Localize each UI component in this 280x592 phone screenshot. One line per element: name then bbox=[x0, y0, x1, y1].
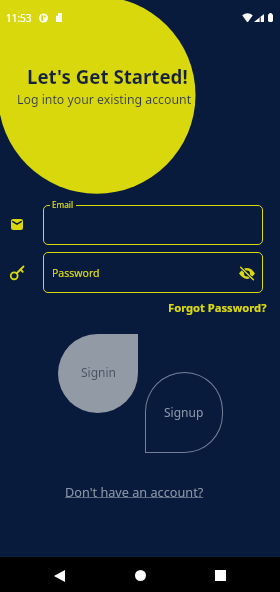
button[interactable]: Password bbox=[43, 252, 263, 293]
button[interactable]: Home bbox=[135, 570, 146, 581]
staticText: Don't have an account? bbox=[65, 483, 207, 500]
staticText: 11:53 bbox=[6, 11, 32, 25]
staticText: Log into your existing account bbox=[17, 91, 192, 108]
button[interactable]: Signup bbox=[145, 372, 223, 453]
button[interactable] bbox=[43, 205, 263, 245]
staticText: Email bbox=[52, 199, 74, 210]
button[interactable]: Toggle password visibility bbox=[239, 267, 255, 280]
button[interactable]: Back bbox=[54, 570, 65, 582]
staticText: Let's Get Started! bbox=[27, 64, 188, 89]
staticText: Password bbox=[52, 266, 100, 280]
staticText: Forgot Password? bbox=[168, 300, 267, 315]
staticText: Signin bbox=[81, 364, 116, 380]
button[interactable]: Forgot Password? bbox=[168, 300, 267, 315]
staticText: Signup bbox=[164, 404, 204, 420]
button[interactable]: Signin bbox=[58, 334, 138, 413]
button[interactable]: Don't have an account? bbox=[65, 483, 207, 500]
